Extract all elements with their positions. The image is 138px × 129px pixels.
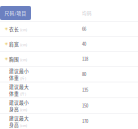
- staticText: 肩宽: [9, 40, 19, 47]
- staticText: 建议最小: [9, 99, 29, 106]
- staticText: 体重: [9, 74, 19, 81]
- staticText: ✳: [4, 41, 8, 46]
- staticText: 40: [82, 41, 86, 47]
- staticText: 衣长: [9, 25, 19, 32]
- staticText: 建议最小: [9, 67, 29, 74]
- staticText: 身高: [9, 106, 19, 112]
- staticText: 建议最大: [9, 83, 29, 90]
- staticText: 尺码/项目: [4, 10, 26, 16]
- staticText: 均码: [82, 10, 92, 16]
- staticText: 170: [82, 118, 88, 124]
- staticText: 胸围: [9, 55, 19, 62]
- staticText: (cm): [20, 42, 27, 47]
- staticText: (cm): [20, 57, 27, 62]
- staticText: (斤): [20, 76, 26, 81]
- staticText: ✳: [4, 26, 8, 31]
- staticText: 80: [82, 71, 86, 77]
- staticText: (斤): [20, 91, 26, 97]
- staticText: (cm): [20, 123, 27, 128]
- staticText: 66: [82, 26, 86, 32]
- staticText: 135: [82, 87, 88, 93]
- staticText: 150: [82, 103, 88, 109]
- staticText: (cm): [20, 107, 27, 112]
- staticText: 118: [82, 56, 88, 62]
- staticText: 建议最大: [9, 114, 29, 121]
- staticText: (cm): [20, 27, 27, 32]
- staticText: 体重: [9, 90, 19, 97]
- staticText: ✳: [4, 56, 8, 61]
- staticText: 身高: [9, 121, 19, 128]
